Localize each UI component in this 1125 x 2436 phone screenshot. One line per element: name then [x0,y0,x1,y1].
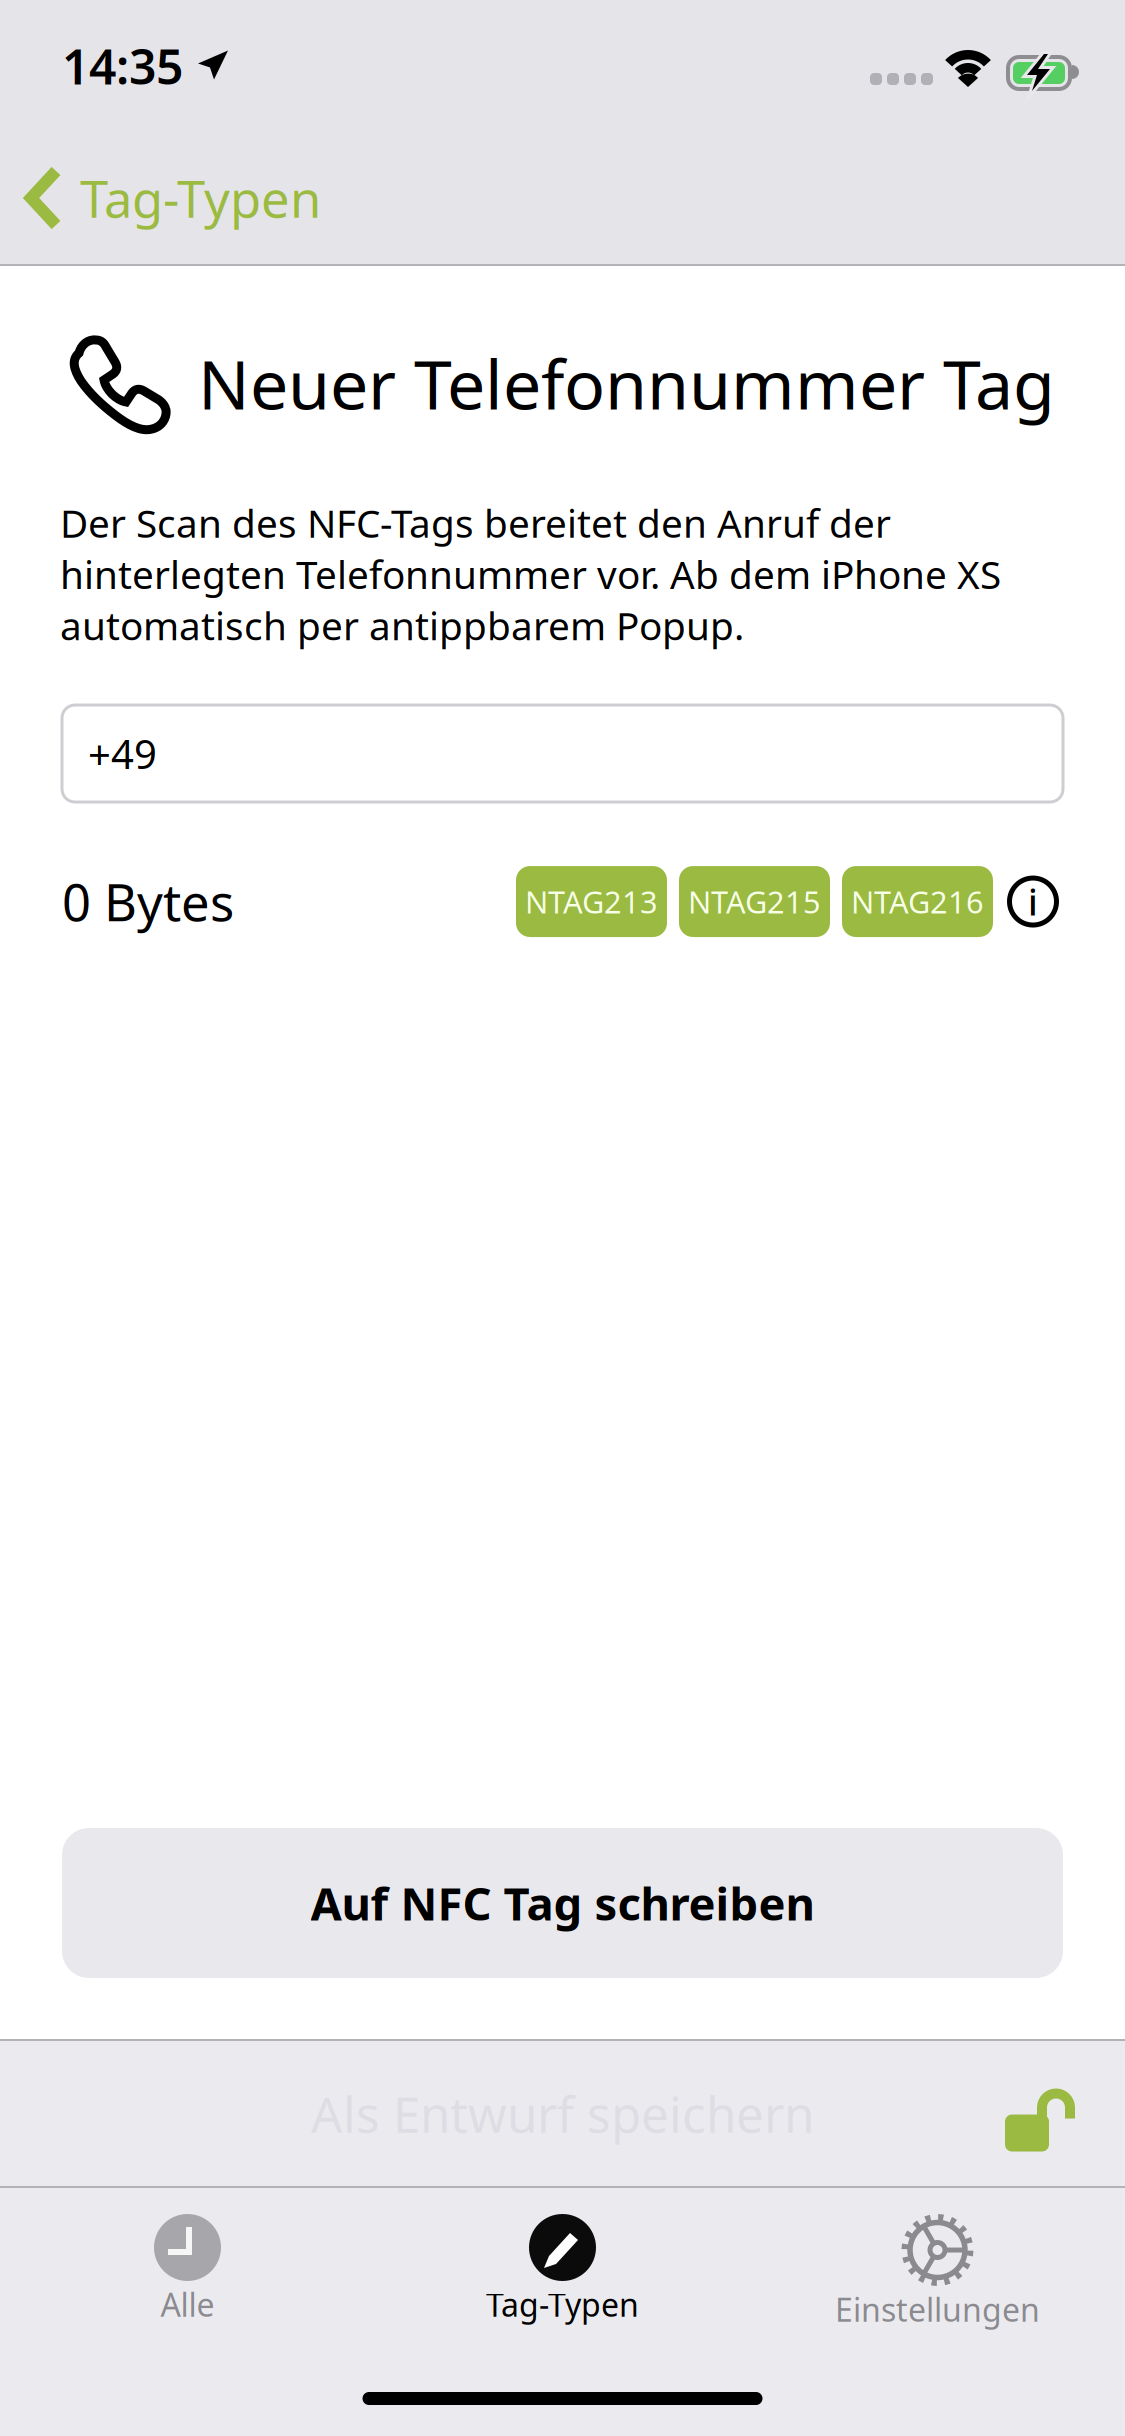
staticText: NTAG215 [688,881,821,922]
button[interactable]: NTAG216 [842,866,993,937]
staticText: Der Scan des NFC-Tags bereitet den Anruf… [60,497,1001,651]
staticText: Tag-Typen [80,164,321,232]
staticText: Alle [160,2283,214,2325]
button[interactable]: Auf NFC Tag schreiben [62,1828,1063,1978]
staticText: Als Entwurf speichern [311,2081,814,2146]
staticText: i [1028,878,1038,925]
button[interactable]: Info [1007,875,1059,927]
button[interactable]: Als Entwurf speichern [0,2041,1125,2186]
staticText: 0 Bytes [62,868,234,935]
button[interactable]: NTAG215 [679,866,830,937]
staticText: 14:35 [62,34,183,98]
staticText: Auf NFC Tag schreiben [310,1873,814,1933]
button[interactable]: Tag-Typen [0,132,345,264]
staticText: Einstellungen [835,2288,1040,2330]
button[interactable]: Alle [0,2214,375,2338]
staticText: NTAG216 [851,881,984,922]
button[interactable]: NTAG213 [516,866,667,937]
staticText: Tag-Typen [486,2283,639,2325]
button[interactable]: Entsperren [1005,2087,1075,2151]
staticText: Neuer Telefonnummer Tag [198,338,1055,428]
button[interactable]: Einstellungen [750,2214,1125,2338]
staticText: +49 [88,727,157,780]
staticText: NTAG213 [525,881,658,922]
button[interactable]: Tag-Typen [375,2214,750,2338]
